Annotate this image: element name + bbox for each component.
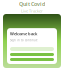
staticText: Welcome back	[10, 31, 37, 36]
staticText: Live Tracker	[21, 8, 43, 14]
staticText: Quit Covid	[19, 0, 45, 7]
staticText: Sign in to continue	[10, 38, 38, 42]
